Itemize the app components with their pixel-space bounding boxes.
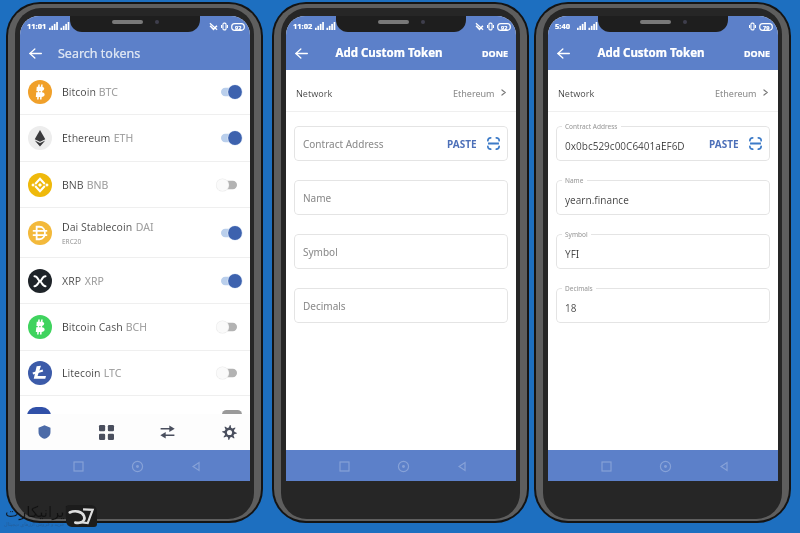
button[interactable]: Wallet: [32, 414, 56, 450]
button[interactable]: Settings: [217, 414, 241, 450]
button[interactable]: DONE: [475, 36, 516, 70]
staticText: BNB: [62, 178, 84, 192]
button[interactable]: Symbol: [294, 234, 508, 269]
staticText: Network: [296, 87, 333, 99]
staticText: ایرانیکارت: [5, 503, 69, 520]
button[interactable]: Ethereum: [20, 115, 250, 161]
staticText: خرید و فروش ارزهای دیجیتال: [4, 521, 65, 528]
staticText: XRP: [62, 274, 82, 288]
button[interactable]: Back: [452, 456, 472, 476]
button[interactable]: Network: [548, 74, 778, 111]
staticText: PASTE: [709, 137, 739, 151]
button[interactable]: Contract Address: [294, 126, 508, 161]
button[interactable]: Network: [286, 74, 516, 111]
staticText: 92: [501, 24, 508, 31]
button[interactable]: Recents: [334, 456, 354, 476]
button[interactable]: XRP: [20, 258, 250, 303]
staticText: Decimals: [303, 299, 346, 313]
button[interactable]: Back: [20, 38, 51, 69]
staticText: Bitcoin: [62, 85, 96, 99]
button[interactable]: Back: [548, 38, 579, 69]
staticText: DONE: [482, 47, 509, 59]
staticText: 79: [763, 24, 770, 31]
staticText: BCH: [123, 320, 147, 334]
staticText: Ethereum: [453, 87, 495, 99]
staticText: PASTE: [447, 137, 477, 151]
staticText: BTC: [96, 85, 118, 99]
button[interactable]: Toggle: [220, 176, 242, 194]
button[interactable]: Decimals: [294, 288, 508, 323]
staticText: LTC: [101, 366, 122, 380]
button[interactable]: YFI: [556, 234, 770, 269]
button[interactable]: Scan QR code: [749, 137, 762, 150]
button[interactable]: Recents: [68, 456, 88, 476]
button[interactable]: Dai Stablecoin: [20, 208, 250, 257]
staticText: Search tokens: [58, 45, 141, 62]
staticText: Add Custom Token: [310, 45, 468, 61]
staticText: 0x0bc529c00C6401aEF6D: [565, 139, 685, 153]
staticText: Network: [558, 87, 595, 99]
staticText: ERC20: [62, 237, 82, 246]
button[interactable]: Name: [294, 180, 508, 215]
button[interactable]: yearn.finance: [556, 180, 770, 215]
staticText: Ethereum: [715, 87, 757, 99]
staticText: BNB: [84, 178, 109, 192]
button[interactable]: Bitcoin: [20, 70, 250, 114]
button[interactable]: Back: [186, 456, 206, 476]
button[interactable]: Recents: [596, 456, 616, 476]
staticText: Symbol: [565, 230, 588, 239]
staticText: ETH: [111, 131, 134, 145]
button[interactable]: DONE: [737, 36, 778, 70]
staticText: Bitcoin Cash: [62, 320, 123, 334]
staticText: YFI: [565, 247, 580, 261]
button[interactable]: Home: [655, 456, 675, 476]
button[interactable]: Toggle: [220, 224, 242, 242]
staticText: 92: [235, 24, 242, 31]
staticText: Add Custom Token: [572, 45, 730, 61]
button[interactable]: Toggle: [220, 83, 242, 101]
button[interactable]: Scan QR code: [487, 137, 500, 150]
button[interactable]: Back: [286, 38, 317, 69]
staticText: DONE: [744, 47, 771, 59]
button[interactable]: Toggle: [220, 272, 242, 290]
staticText: DAI: [133, 220, 154, 234]
button[interactable]: BNB: [20, 162, 250, 207]
button[interactable]: Toggle: [220, 364, 242, 382]
button[interactable]: Swap: [155, 414, 179, 450]
staticText: Litecoin: [62, 366, 101, 380]
staticText: Symbol: [303, 245, 338, 259]
button[interactable]: PASTE: [446, 137, 478, 151]
staticText: Dai Stablecoin: [62, 220, 133, 234]
staticText: Name: [303, 191, 332, 205]
button[interactable]: Bitcoin Cash: [20, 304, 250, 350]
button[interactable]: Apps: [94, 414, 118, 450]
staticText: Contract Address: [303, 137, 384, 151]
staticText: Name: [565, 176, 584, 185]
button[interactable]: Back: [714, 456, 734, 476]
staticText: 11:01: [27, 21, 47, 31]
staticText: 11:02: [293, 21, 313, 31]
staticText: XRP: [82, 274, 104, 288]
button[interactable]: Home: [127, 456, 147, 476]
button[interactable]: PASTE: [708, 137, 740, 151]
staticText: Ethereum: [62, 131, 111, 145]
button[interactable]: Home: [393, 456, 413, 476]
button[interactable]: 18: [556, 288, 770, 323]
staticText: Decimals: [565, 284, 593, 293]
staticText: 5:40: [555, 21, 570, 31]
button[interactable]: Litecoin: [20, 351, 250, 395]
staticText: yearn.finance: [565, 193, 629, 207]
button[interactable]: Toggle: [220, 129, 242, 147]
staticText: 18: [565, 301, 577, 315]
button[interactable]: 0x0bc529c00C6401aEF6D: [556, 126, 770, 161]
staticText: Contract Address: [565, 122, 618, 131]
button[interactable]: Toggle: [220, 318, 242, 336]
